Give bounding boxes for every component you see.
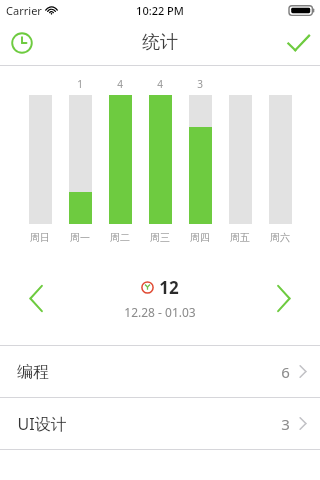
staticText: 周三 bbox=[150, 231, 170, 244]
staticText: 1 bbox=[77, 77, 83, 91]
staticText: 10:22 PM bbox=[136, 3, 184, 18]
button[interactable]: Done bbox=[276, 21, 320, 65]
staticText: 3 bbox=[281, 414, 290, 434]
button[interactable]: Next week bbox=[248, 271, 320, 325]
staticText: 12 bbox=[159, 276, 179, 299]
button[interactable]: 编程 bbox=[0, 346, 320, 397]
staticText: 周一 bbox=[70, 231, 90, 244]
staticText: 12.28 - 01.03 bbox=[124, 304, 196, 320]
staticText: UI设计 bbox=[17, 413, 67, 435]
button[interactable]: Timer bbox=[0, 21, 44, 65]
button[interactable]: Previous week bbox=[0, 271, 72, 325]
staticText: 周日 bbox=[30, 231, 50, 244]
staticText: 3 bbox=[197, 77, 203, 91]
button[interactable]: UI设计 bbox=[0, 398, 320, 449]
staticText: 4 bbox=[117, 77, 123, 91]
staticText: 周二 bbox=[110, 231, 130, 244]
staticText: 周四 bbox=[190, 231, 210, 244]
staticText: 周五 bbox=[230, 231, 250, 244]
staticText: 周六 bbox=[270, 231, 290, 244]
staticText: 统计 bbox=[142, 31, 178, 54]
staticText: 编程 bbox=[17, 362, 49, 382]
staticText: 6 bbox=[281, 362, 290, 382]
staticText: 4 bbox=[157, 77, 163, 91]
staticText: Carrier bbox=[6, 3, 42, 18]
